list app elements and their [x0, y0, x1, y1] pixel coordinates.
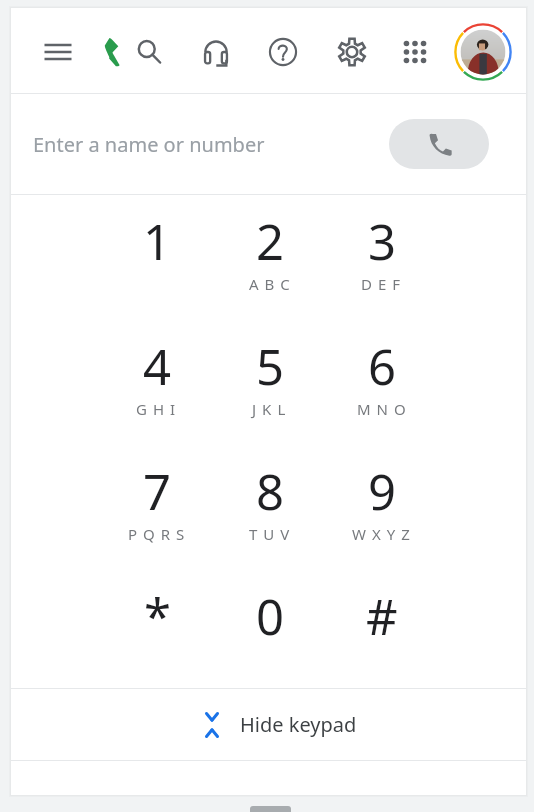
staticText: DEF [361, 274, 407, 294]
button[interactable]: 8 [214, 439, 326, 561]
button[interactable]: 3 [326, 189, 438, 311]
button[interactable]: Call [389, 119, 489, 169]
button[interactable]: Settings [331, 31, 373, 73]
staticText: 0 [256, 583, 285, 650]
staticText: MNO [357, 399, 412, 419]
staticText: Hide keypad [240, 711, 357, 738]
button[interactable]: 7 [101, 439, 213, 561]
button[interactable]: Support [195, 31, 237, 73]
staticText: 3 [368, 208, 397, 275]
button[interactable]: 0 [214, 564, 326, 686]
button[interactable]: Hide keypad [11, 689, 526, 760]
button[interactable]: 2 [214, 189, 326, 311]
button[interactable]: 4 [101, 314, 213, 436]
button[interactable]: Google apps [394, 31, 436, 73]
staticText: 2 [256, 208, 285, 275]
button[interactable]: Enter a name or number [11, 94, 526, 194]
staticText: GHI [136, 399, 182, 419]
button[interactable]: Help [262, 31, 304, 73]
button[interactable]: Google Account [453, 22, 513, 82]
button[interactable]: 6 [326, 314, 438, 436]
staticText: PQRS [128, 524, 191, 544]
staticText: ABC [249, 274, 296, 294]
button[interactable]: 9 [326, 439, 438, 561]
staticText: TUV [249, 524, 296, 544]
button[interactable]: * [101, 564, 213, 686]
staticText: 5 [256, 333, 285, 400]
staticText: 9 [368, 458, 397, 525]
button[interactable]: Google Voice [91, 31, 133, 73]
staticText: JKL [252, 399, 292, 419]
staticText: # [366, 583, 398, 650]
button[interactable]: 5 [214, 314, 326, 436]
staticText: 6 [368, 333, 397, 400]
button[interactable]: Search [128, 31, 170, 73]
staticText: 4 [143, 333, 172, 400]
staticText: * [144, 583, 171, 650]
button[interactable]: # [326, 564, 438, 686]
button[interactable]: 1 [101, 189, 213, 311]
staticText: 8 [256, 458, 285, 525]
staticText: Enter a name or number [33, 131, 265, 158]
staticText: 7 [143, 458, 172, 525]
staticText: 1 [143, 208, 172, 275]
button[interactable]: Menu [37, 31, 79, 73]
staticText: WXYZ [352, 524, 416, 544]
